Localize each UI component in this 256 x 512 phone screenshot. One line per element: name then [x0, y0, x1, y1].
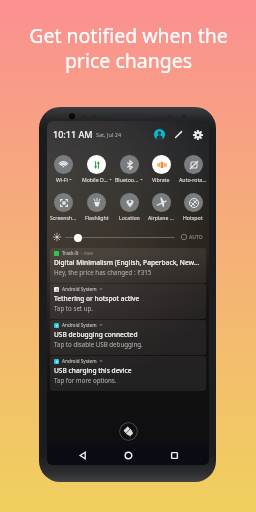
button[interactable]: Home	[119, 446, 137, 464]
staticText: Tap to set up.	[54, 304, 93, 312]
staticText: Bluetoo...	[115, 176, 139, 183]
staticText: Mobile D...	[82, 176, 108, 183]
staticText: Tap to disable USB debugging.	[54, 340, 143, 348]
staticText: - now	[81, 250, 93, 256]
staticText: Flashlight	[85, 214, 109, 221]
staticText: Tap for more options.	[54, 376, 117, 384]
button[interactable]: Flashlight	[80, 193, 113, 221]
button[interactable]: Android System	[50, 320, 206, 355]
staticText: Auto-rota...	[179, 176, 207, 183]
button[interactable]: Edit tiles	[172, 128, 185, 141]
button[interactable]: Auto-rota...	[177, 155, 209, 183]
staticText: Hotspot	[183, 214, 203, 221]
button[interactable]: Screensh...	[47, 193, 80, 221]
button[interactable]: Recent apps	[165, 446, 183, 464]
button[interactable]: Hotspot	[177, 193, 209, 221]
staticText: Android System	[62, 322, 97, 328]
button[interactable]: Wi-Fi	[47, 155, 80, 183]
staticText: Airplane ...	[148, 214, 174, 221]
button[interactable]: Bluetoo...	[113, 155, 145, 183]
button[interactable]: Airplane ...	[145, 193, 177, 221]
staticText: USB charging this device	[54, 366, 132, 375]
staticText: 10:11 AM	[53, 128, 93, 140]
staticText: Location	[119, 214, 140, 221]
staticText: Vibrate	[152, 176, 170, 183]
staticText: Sat, Jul 24	[96, 131, 122, 138]
button[interactable]: Mobile D...	[80, 155, 113, 183]
button[interactable]: Settings	[191, 128, 204, 141]
button[interactable]: Location	[113, 193, 145, 221]
staticText: Hey, the price has changed : ₹315	[54, 268, 152, 276]
staticText: Android System	[62, 286, 97, 292]
staticText: Tethering or hotspot active	[54, 294, 140, 303]
staticText: Get notified when the price changes	[29, 22, 228, 74]
staticText: USB debugging connected	[54, 330, 138, 339]
staticText: Track-It	[62, 250, 79, 256]
staticText: AUTO	[189, 234, 203, 241]
staticText: Wi-Fi	[56, 176, 68, 183]
button[interactable]: Clear all notifications	[119, 422, 138, 441]
button[interactable]: User profile	[152, 127, 166, 141]
button[interactable]: Vibrate	[145, 155, 177, 183]
button[interactable]: Android System	[50, 284, 206, 319]
staticText: Screensh...	[50, 214, 77, 221]
button[interactable]: Back	[73, 446, 91, 464]
staticText: Android System	[62, 358, 97, 364]
staticText: Digital Minimalism (English, Paperback, …	[54, 258, 202, 267]
button[interactable]: Track-It	[50, 248, 206, 283]
button[interactable]: Android System	[50, 356, 206, 391]
